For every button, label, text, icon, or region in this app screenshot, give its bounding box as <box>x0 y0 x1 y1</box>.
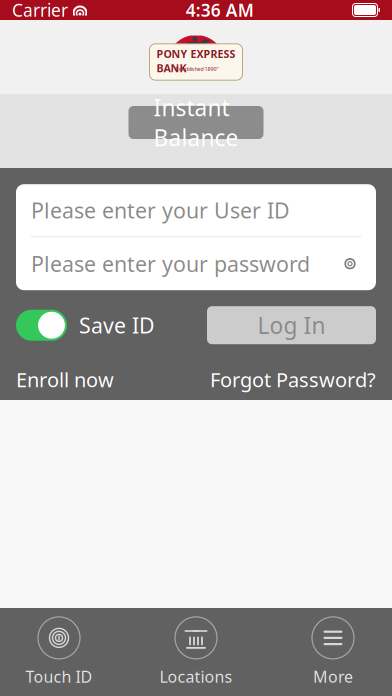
staticText: Log In <box>257 310 325 340</box>
staticText: Please enter your User ID <box>31 196 290 224</box>
staticText: Instant Balance <box>153 92 238 153</box>
button[interactable]: Forgot Password? <box>210 366 376 393</box>
staticText: Carrier <box>12 0 68 21</box>
button[interactable]: Log In <box>207 306 376 344</box>
staticText: More <box>313 666 353 687</box>
button[interactable]: More <box>278 617 388 687</box>
button[interactable]: Locations <box>141 617 251 687</box>
button[interactable]: Enroll now <box>16 366 114 393</box>
button[interactable]: Please enter your password <box>16 237 376 290</box>
button[interactable]: Please enter your User ID <box>16 184 376 236</box>
staticText: Touch ID <box>25 666 92 687</box>
staticText: 4:36 AM <box>186 0 254 21</box>
staticText: "Established 1890" <box>173 65 218 73</box>
button[interactable]: Instant Balance <box>128 106 263 139</box>
staticText: Enroll now <box>16 366 114 393</box>
staticText: Save ID <box>79 311 155 339</box>
button[interactable]: Touch ID <box>4 617 114 687</box>
staticText: Please enter your password <box>31 250 310 278</box>
button[interactable]: Save ID <box>16 310 155 341</box>
staticText: PONY EXPRESS BANK <box>156 47 235 75</box>
staticText: Locations <box>159 666 232 687</box>
staticText: Forgot Password? <box>210 366 376 393</box>
